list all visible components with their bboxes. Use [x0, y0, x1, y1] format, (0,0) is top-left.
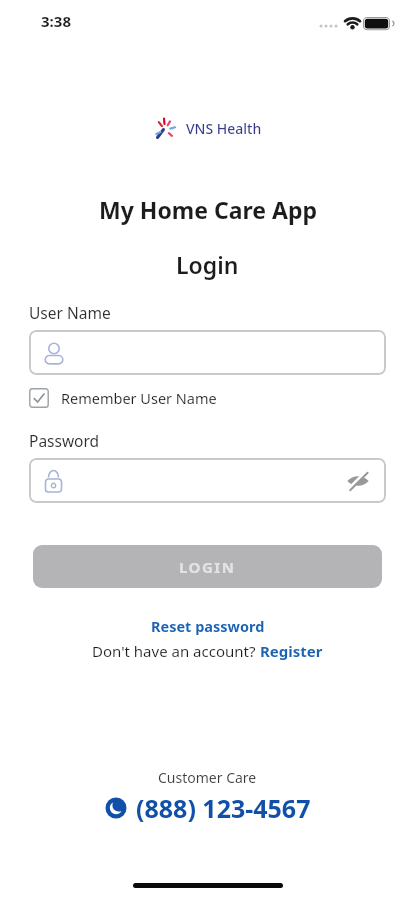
staticText: (888) 123-4567 [136, 791, 311, 825]
button[interactable] [346, 469, 370, 493]
button[interactable]: Register [260, 641, 323, 661]
staticText: Don't have an account? [92, 641, 260, 661]
staticText: Login [176, 249, 239, 280]
staticText: LOGIN [179, 557, 236, 577]
staticText: User Name [29, 302, 111, 323]
button[interactable]: Reset password [151, 616, 265, 636]
staticText: Register [260, 641, 323, 661]
button[interactable]: (888) 123-4567 [105, 791, 311, 825]
button[interactable]: Remember User Name [29, 388, 217, 408]
button[interactable] [29, 330, 386, 375]
button[interactable] [29, 458, 386, 503]
staticText: Customer Care [158, 768, 257, 787]
staticText: My Home Care App [99, 194, 317, 225]
staticText: 3:38 [41, 11, 71, 31]
staticText: Password [29, 430, 100, 451]
staticText: Reset password [151, 616, 265, 636]
staticText: VNS Health [186, 119, 262, 138]
button[interactable]: LOGIN [33, 545, 382, 588]
staticText: Remember User Name [61, 388, 217, 408]
